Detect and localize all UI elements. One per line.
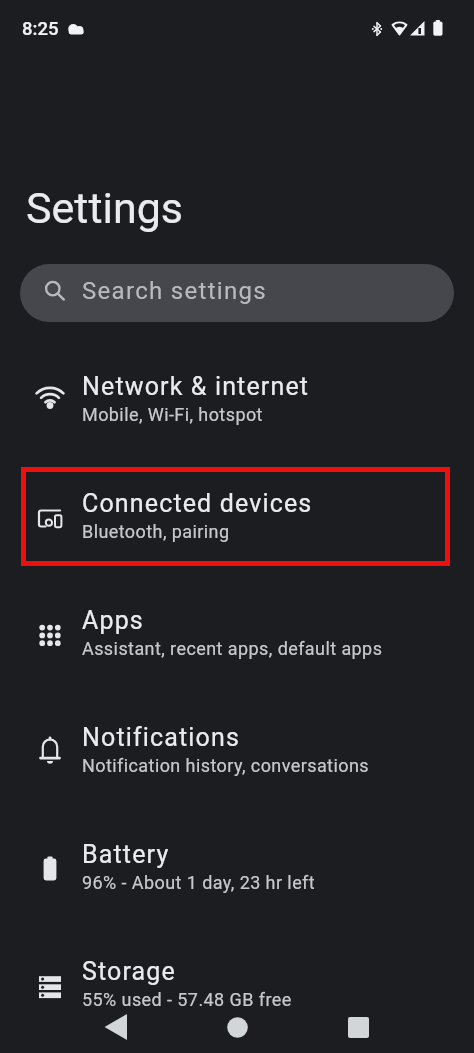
button[interactable]: Connected devices [0, 457, 474, 574]
staticText: Notification history, conversations [82, 755, 369, 776]
staticText: Battery [82, 840, 170, 869]
staticText: Connected devices [82, 489, 313, 518]
staticText: 96% - About 1 day, 23 hr left [82, 872, 316, 893]
staticText: Search settings [82, 277, 267, 305]
button[interactable]: Notifications [0, 691, 474, 808]
button[interactable]: Apps [0, 574, 474, 691]
button[interactable]: Storage [0, 925, 474, 1042]
staticText: Apps [82, 606, 144, 635]
staticText: 55% used - 57.48 GB free [82, 989, 292, 1010]
staticText: Mobile, Wi-Fi, hotspot [82, 404, 263, 425]
staticText: Assistant, recent apps, default apps [82, 638, 383, 659]
button[interactable] [214, 1002, 260, 1052]
button[interactable]: Network & internet [0, 340, 474, 457]
button[interactable] [92, 1002, 138, 1052]
button[interactable] [335, 1002, 381, 1052]
staticText: Bluetooth, pairing [82, 521, 230, 542]
staticText: Storage [82, 957, 176, 986]
staticText: Settings [26, 183, 184, 233]
staticText: Notifications [82, 723, 240, 752]
staticText: 8:25 [22, 18, 59, 40]
staticText: Network & internet [82, 372, 310, 401]
button[interactable]: Search settings [20, 264, 454, 322]
button[interactable]: Battery [0, 808, 474, 925]
